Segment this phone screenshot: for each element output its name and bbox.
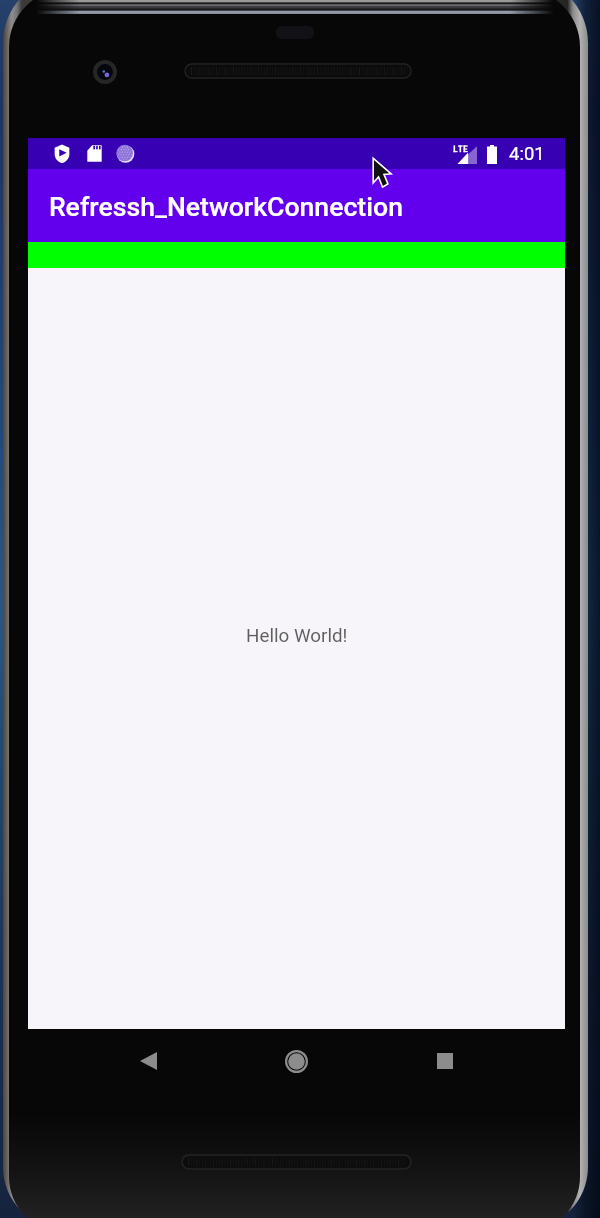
button[interactable]: Home <box>266 1031 326 1091</box>
staticText: 4:01 <box>509 143 545 165</box>
button[interactable]: Recent apps <box>415 1031 475 1091</box>
staticText: Refressh_NetworkConnection <box>49 191 403 222</box>
staticText: Hello World! <box>246 625 348 647</box>
button[interactable]: Back <box>118 1031 178 1091</box>
